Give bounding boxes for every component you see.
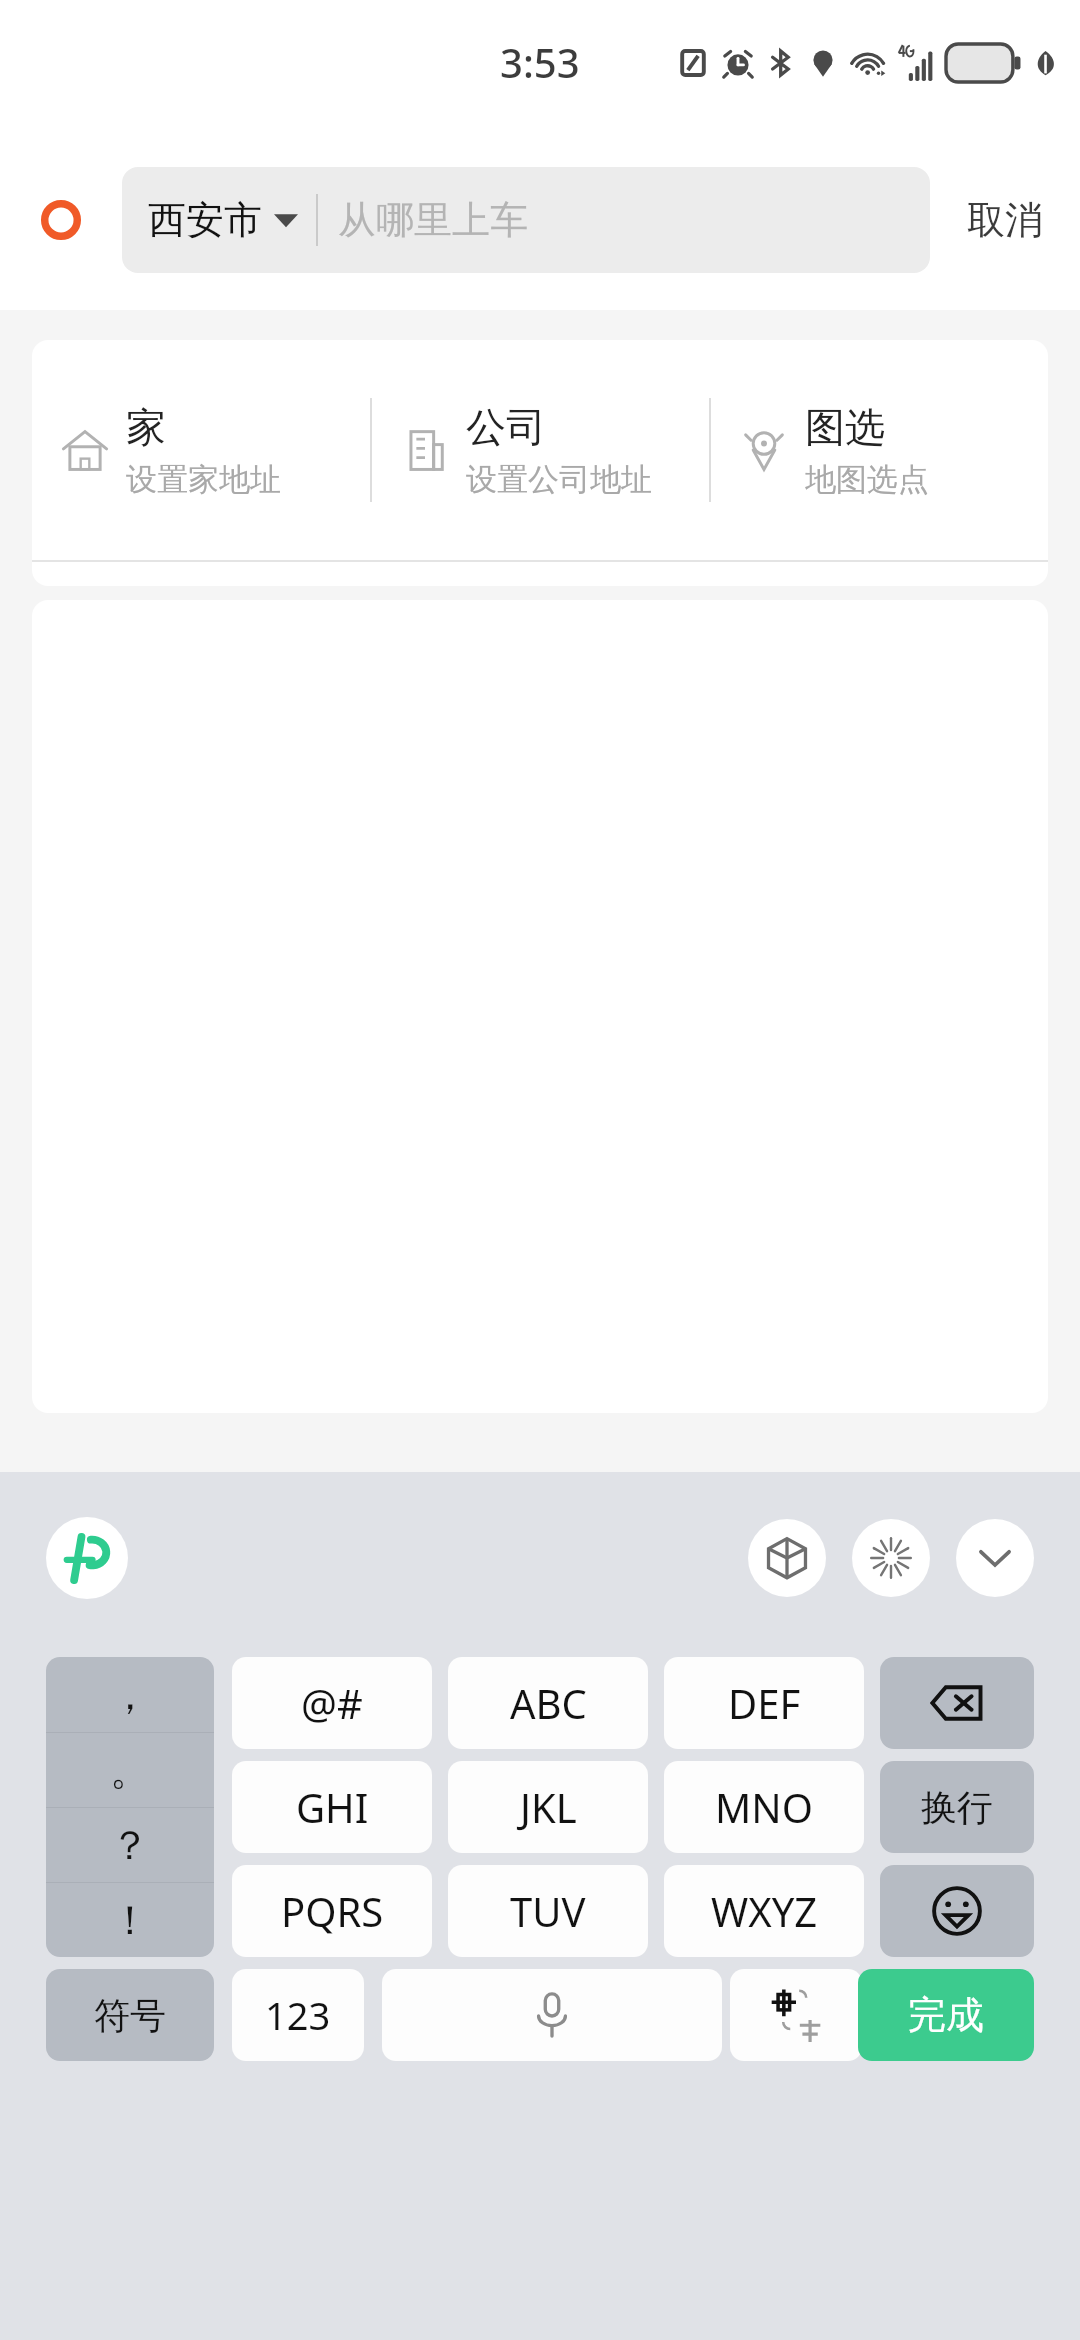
staticText: @# — [301, 1676, 363, 1730]
button[interactable]: DEF — [664, 1657, 864, 1749]
button[interactable]: Origin — [0, 130, 122, 310]
staticText: GHI — [296, 1780, 369, 1834]
staticText: ABC — [510, 1676, 587, 1730]
button[interactable]: 西安市 — [122, 167, 930, 273]
button[interactable]: Style — [748, 1519, 826, 1597]
button[interactable]: ABC — [448, 1657, 648, 1749]
staticText: 123 — [265, 1989, 331, 2041]
button[interactable]: Voice input — [382, 1969, 722, 2061]
staticText: ， — [110, 1670, 150, 1720]
button[interactable]: WXYZ — [664, 1865, 864, 1957]
button[interactable]: 符号 — [46, 1969, 214, 2061]
button[interactable]: JKL — [448, 1761, 648, 1853]
button[interactable]: 。 — [46, 1733, 214, 1807]
button[interactable]: 完成 — [858, 1969, 1034, 2061]
staticText: 设置公司地址 — [466, 460, 652, 499]
staticText: PQRS — [281, 1884, 384, 1938]
staticText: 公司 — [466, 402, 546, 452]
staticText: ！ — [110, 1895, 150, 1945]
staticText: 。 — [110, 1745, 150, 1795]
button[interactable]: IME logo — [46, 1517, 128, 1599]
staticText: 换行 — [921, 1785, 993, 1830]
button[interactable]: Loading — [852, 1519, 930, 1597]
button[interactable]: ， — [46, 1657, 214, 1732]
button[interactable]: PQRS — [232, 1865, 432, 1957]
button[interactable]: 图选 — [711, 340, 1048, 560]
staticText: TUV — [510, 1884, 586, 1938]
button[interactable]: Backspace — [880, 1657, 1034, 1749]
button[interactable]: 123 — [232, 1969, 364, 2061]
staticText: WXYZ — [711, 1884, 818, 1938]
button[interactable]: ？ — [46, 1808, 214, 1882]
staticText: ？ — [110, 1820, 150, 1870]
staticText: 取消 — [967, 196, 1043, 244]
staticText: DEF — [728, 1676, 801, 1730]
staticText: 完成 — [908, 1991, 984, 2039]
staticText: 家 — [126, 402, 166, 452]
staticText: 3:53 — [500, 35, 580, 89]
button[interactable]: TUV — [448, 1865, 648, 1957]
button[interactable]: MNO — [664, 1761, 864, 1853]
button[interactable]: Chinese English toggle — [730, 1969, 862, 2061]
button[interactable]: ！ — [46, 1883, 214, 1957]
staticText: 符号 — [94, 1993, 166, 2038]
staticText: 从哪里上车 — [338, 196, 528, 244]
button[interactable]: @# — [232, 1657, 432, 1749]
staticText: 西安市 — [148, 196, 262, 244]
button[interactable]: 家 — [32, 340, 370, 560]
button[interactable]: Hide keyboard — [956, 1519, 1034, 1597]
button[interactable]: 公司 — [372, 340, 709, 560]
staticText: 设置家地址 — [126, 460, 281, 499]
button[interactable]: 取消 — [930, 130, 1080, 310]
button[interactable]: Emoji — [880, 1865, 1034, 1957]
staticText: MNO — [715, 1780, 813, 1834]
staticText: JKL — [520, 1780, 577, 1834]
button[interactable]: 换行 — [880, 1761, 1034, 1853]
staticText: 地图选点 — [805, 460, 929, 499]
staticText: 图选 — [805, 402, 885, 452]
button[interactable]: GHI — [232, 1761, 432, 1853]
